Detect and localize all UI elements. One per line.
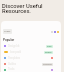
button[interactable]: Design kit: [4, 43, 53, 49]
staticText: Ready: [45, 51, 52, 54]
staticText: Pending: [43, 63, 52, 66]
button[interactable]: Today: [3, 29, 12, 34]
button[interactable]: Tools: [4, 67, 53, 72]
button[interactable]: Guides: [4, 61, 53, 67]
staticText: Icon pack: [10, 51, 22, 54]
staticText: Design kit: [8, 45, 20, 48]
staticText: Popular: [3, 38, 15, 42]
staticText: Discover Useful Resources.: [2, 3, 58, 14]
staticText: Guides: [8, 63, 17, 66]
staticText: Tools: [8, 68, 15, 71]
button[interactable]: Icon pack: [4, 49, 53, 55]
button[interactable]: Templates: [4, 55, 53, 61]
staticText: Free: [47, 45, 52, 48]
staticText: Today: [4, 30, 11, 33]
staticText: Templates: [8, 57, 21, 60]
